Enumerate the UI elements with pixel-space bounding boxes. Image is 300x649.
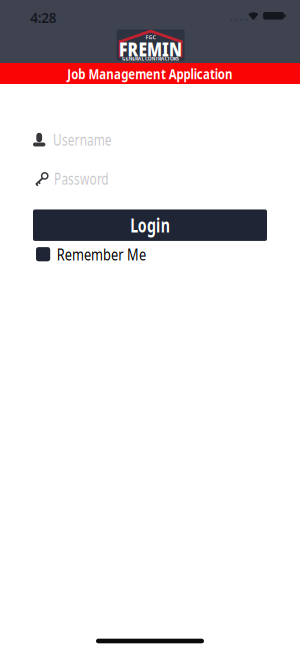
staticText: GENERAL CONTRACTORS	[120, 55, 182, 62]
staticText: Job Management Application	[44, 64, 256, 83]
button[interactable]: Password	[33, 168, 267, 188]
button[interactable]: Login	[33, 209, 267, 241]
staticText: 4:28	[29, 8, 57, 27]
staticText: Login	[124, 213, 176, 238]
staticText: FGC	[146, 34, 156, 41]
staticText: FREMIN	[110, 35, 191, 62]
staticText: Remember Me	[57, 244, 169, 265]
button[interactable]: Remember Me	[36, 245, 264, 263]
staticText: Username	[53, 129, 132, 150]
button[interactable]: Username	[33, 129, 267, 149]
staticText: Password	[54, 168, 128, 189]
